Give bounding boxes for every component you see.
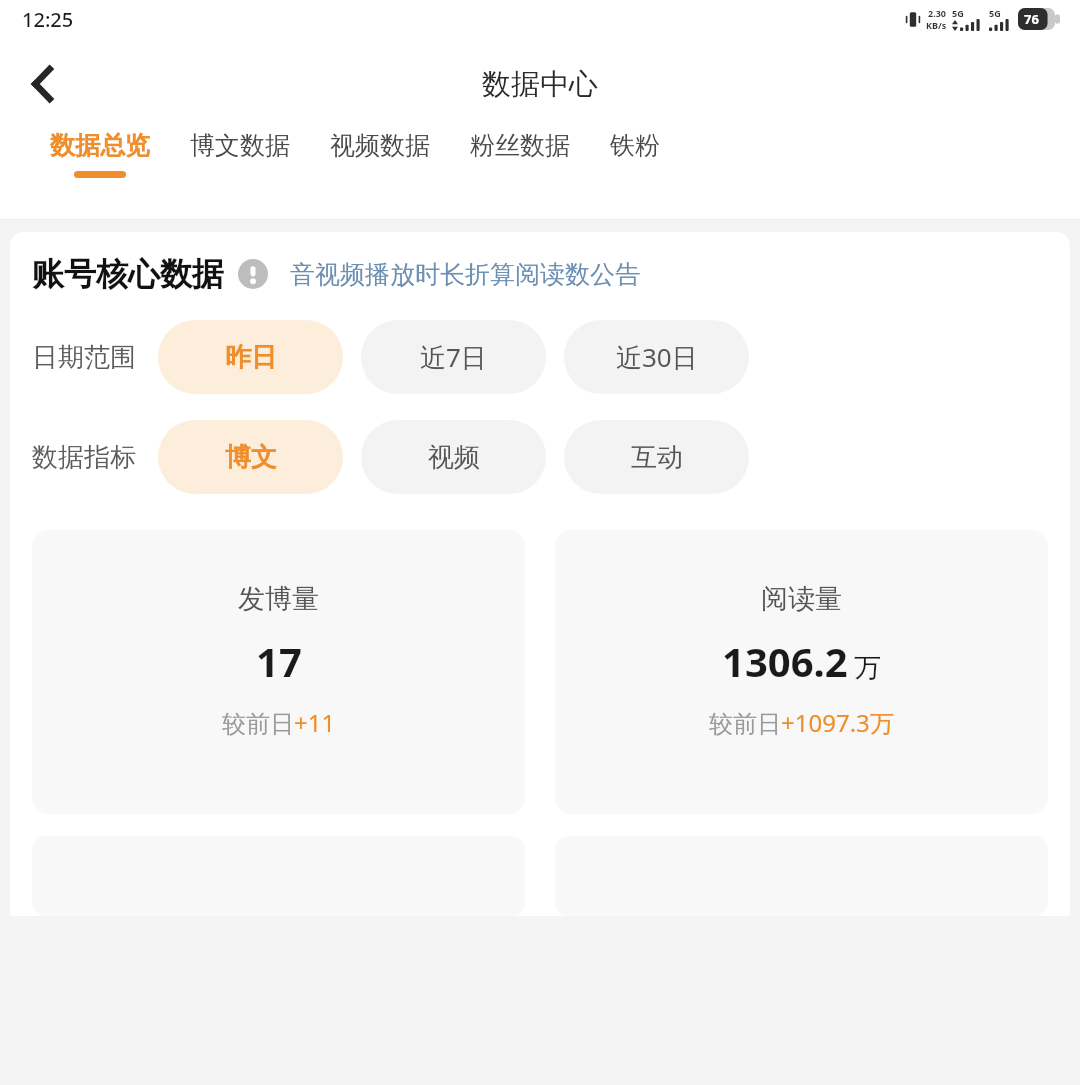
staticText: 万 xyxy=(854,651,881,685)
button[interactable]: 互动 xyxy=(564,420,749,494)
staticText: 17 xyxy=(256,634,302,688)
button[interactable]: 数据总览 xyxy=(30,130,170,178)
staticText: 较前日+11 xyxy=(222,706,336,739)
button[interactable]: 铁粉 xyxy=(590,130,680,171)
staticText: 12:25 xyxy=(22,6,74,33)
staticText: 粉丝数据 xyxy=(470,130,570,161)
button[interactable]: 粉丝数据 xyxy=(450,130,590,171)
staticText: 近30日 xyxy=(616,339,698,375)
staticText: 5G xyxy=(989,7,1001,19)
button[interactable]: 音视频播放时长折算阅读数公告 xyxy=(290,259,640,290)
button[interactable]: 视频数据 xyxy=(310,130,450,171)
button[interactable]: 近7日 xyxy=(361,320,546,394)
staticText: 视频数据 xyxy=(330,130,430,161)
button[interactable]: 视频 xyxy=(361,420,546,494)
staticText: 日期范围 xyxy=(32,341,136,374)
staticText: 阅读量 xyxy=(761,582,842,616)
staticText: 近7日 xyxy=(420,339,487,375)
staticText: 发博量 xyxy=(238,582,319,616)
button[interactable]: Info xyxy=(236,257,270,291)
button[interactable]: 博文数据 xyxy=(170,130,310,171)
staticText: 昨日 xyxy=(225,341,277,374)
staticText: 数据总览 xyxy=(50,130,150,161)
staticText: 76 xyxy=(1024,10,1039,28)
button[interactable]: 阅读量 xyxy=(555,530,1048,814)
staticText: 博文 xyxy=(225,441,277,474)
staticText: 互动 xyxy=(631,441,683,474)
staticText: 视频 xyxy=(428,441,480,474)
button[interactable]: 近30日 xyxy=(564,320,749,394)
staticText: 较前日+1097.3万 xyxy=(709,706,894,739)
staticText: 铁粉 xyxy=(610,130,660,161)
staticText: 账号核心数据 xyxy=(32,254,224,294)
staticText: 数据中心 xyxy=(482,66,598,103)
button[interactable]: 博文 xyxy=(158,420,343,494)
button[interactable]: 发博量 xyxy=(32,530,525,814)
staticText: 5G xyxy=(952,7,964,19)
staticText: 博文数据 xyxy=(190,130,290,161)
staticText: 数据指标 xyxy=(32,441,136,474)
staticText: 2.30 xyxy=(928,7,946,19)
button[interactable]: Back xyxy=(14,55,72,113)
staticText: KB/s xyxy=(926,19,947,31)
button[interactable]: 昨日 xyxy=(158,320,343,394)
staticText: 1306.2 xyxy=(722,634,848,688)
